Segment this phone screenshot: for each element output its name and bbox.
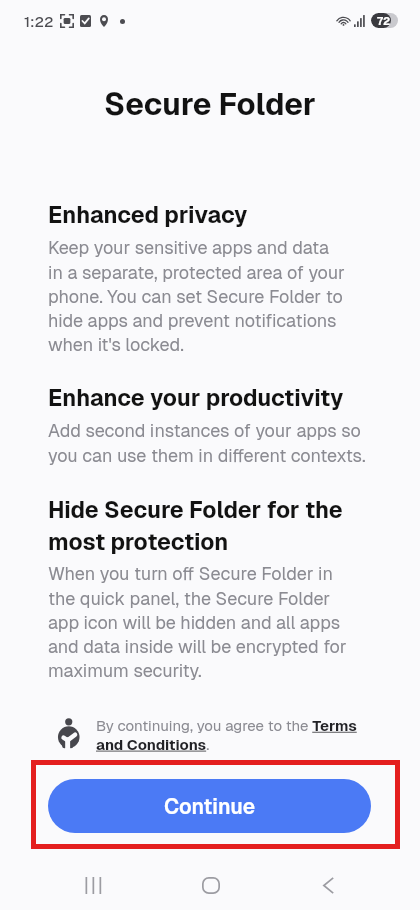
staticText: Add second instances of your apps so you… (48, 419, 366, 467)
staticText: Secure Folder (0, 84, 420, 124)
staticText: Hide Secure Folder for the most protecti… (48, 495, 343, 557)
staticText: Continue (164, 793, 256, 820)
staticText: 1:22 (24, 12, 54, 31)
button[interactable]: Continue (48, 779, 371, 833)
staticText: By continuing, you agree to the Terms an… (96, 716, 357, 754)
button[interactable]: Home (187, 861, 235, 909)
button[interactable]: Back (304, 861, 352, 909)
button[interactable]: Recent apps (69, 861, 117, 909)
staticText: Enhance your productivity (48, 383, 344, 413)
staticText: 72 (377, 14, 391, 28)
staticText: Enhanced privacy (48, 200, 248, 230)
staticText: Keep your sensitive apps and data in a s… (48, 236, 345, 356)
staticText: When you turn off Secure Folder in the q… (48, 562, 347, 682)
